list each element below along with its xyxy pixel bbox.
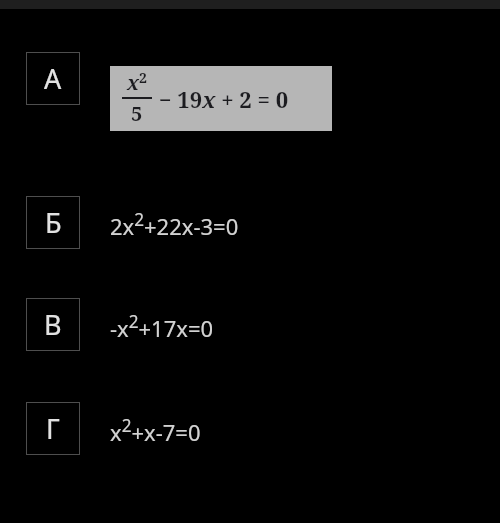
staticText: 2x2+22x-3=0 — [110, 208, 239, 241]
staticText: 5 — [131, 100, 143, 127]
button[interactable]: Option А — [26, 52, 332, 117]
button[interactable]: Г — [26, 402, 201, 455]
staticText: Б — [45, 204, 62, 241]
staticText: Г — [46, 410, 60, 447]
staticText: А — [44, 60, 62, 97]
staticText: В — [44, 306, 62, 343]
staticText: − 19x + 2 = 0 — [159, 84, 289, 114]
button[interactable]: Б — [26, 196, 239, 249]
staticText: x2 — [127, 68, 147, 96]
button[interactable]: В — [26, 298, 214, 351]
staticText: x2+x-7=0 — [110, 414, 201, 447]
staticText: -x2+17x=0 — [110, 310, 214, 343]
